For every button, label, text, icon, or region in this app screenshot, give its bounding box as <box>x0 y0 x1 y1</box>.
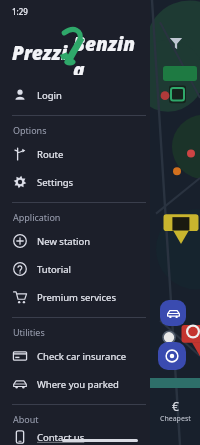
button[interactable]: Premium services <box>0 283 150 311</box>
staticText: Settings <box>37 176 74 189</box>
button[interactable]: Tutorial <box>0 255 150 283</box>
staticText: About <box>13 413 39 425</box>
staticText: Premium services <box>37 291 116 304</box>
staticText: Prezzi <box>12 40 68 66</box>
button[interactable]: Filter <box>165 32 187 54</box>
staticText: Tutorial <box>37 263 72 276</box>
button[interactable]: Contact us <box>0 429 150 445</box>
staticText: € <box>172 398 179 414</box>
staticText: Options <box>13 124 47 136</box>
staticText: Check car insurance <box>37 350 127 363</box>
staticText: Where you parked <box>37 378 119 391</box>
staticText: Contact us <box>37 431 85 444</box>
staticText: Cheapest <box>160 414 191 424</box>
button[interactable]: Where you parked <box>160 300 186 326</box>
staticText: Route <box>37 148 64 161</box>
staticText: Login <box>37 89 62 102</box>
button[interactable]: Route <box>0 140 150 168</box>
button[interactable]: Check car insurance <box>0 342 150 370</box>
button[interactable]: Where you parked <box>0 370 150 398</box>
staticText: Application <box>13 211 61 223</box>
staticText: 1:29 <box>12 6 28 17</box>
staticText: Benzina <box>73 31 145 75</box>
staticText: New station <box>37 235 91 248</box>
staticText: Utilities <box>13 326 45 338</box>
button[interactable]: Login <box>0 81 150 109</box>
button[interactable]: My location <box>158 342 186 370</box>
button[interactable]: Settings <box>0 168 150 196</box>
button[interactable]: New station <box>0 227 150 255</box>
